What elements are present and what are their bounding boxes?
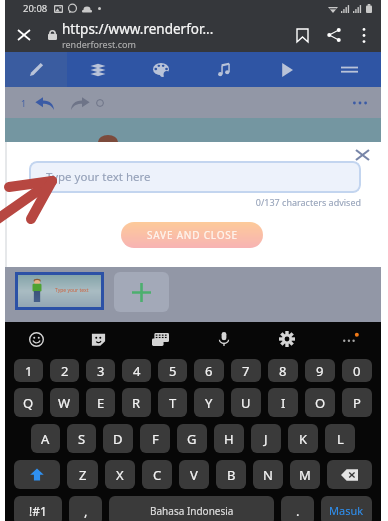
button[interactable]: Emoji [5,322,67,356]
button[interactable]: Backspace [327,460,372,489]
button[interactable]: Layers [67,52,129,87]
button[interactable]: 8 [268,359,298,382]
staticText: 1 [25,362,33,380]
staticText: E [97,394,105,412]
button[interactable]: 0 [342,359,372,382]
staticText: https://www.renderfor... [62,20,214,38]
button[interactable]: G [177,424,207,453]
button[interactable]: !#1 [14,496,62,521]
staticText: B [227,466,236,484]
button[interactable]: F [140,424,170,453]
button[interactable]: Bookmark [286,19,318,51]
staticText: S [78,430,86,448]
staticText: 9 [316,362,324,380]
button[interactable]: J [251,424,281,453]
button[interactable]: Bahasa Indonesia [109,496,274,521]
button[interactable]: P [342,388,372,417]
button[interactable]: Scene 1 [18,275,101,307]
staticText: W [58,394,71,412]
button[interactable]: D [103,424,133,453]
button[interactable]: 6 [194,359,224,382]
button[interactable]: , [69,496,102,521]
button[interactable]: 4 [122,359,151,382]
staticText: V [190,466,198,484]
staticText: A [41,430,50,448]
button[interactable]: C [142,460,172,489]
staticText: 0 [353,362,361,380]
button[interactable]: 7 [231,359,261,382]
button[interactable]: R [122,388,151,417]
staticText: U [241,394,251,412]
button[interactable]: 2 [50,359,79,382]
button[interactable]: 3 [86,359,115,382]
button[interactable]: L [325,424,355,453]
staticText: N [263,466,273,484]
staticText: , [84,502,88,520]
button[interactable]: More [347,90,373,116]
staticText: 6 [205,362,213,380]
button[interactable]: W [50,388,79,417]
button[interactable]: SAVE AND CLOSE [121,222,263,248]
button[interactable]: S [67,424,96,453]
staticText: . [296,502,300,520]
button[interactable]: X [105,460,135,489]
staticText: R [132,394,141,412]
button[interactable]: Redo [70,93,90,113]
button[interactable]: Share [318,19,350,51]
button[interactable]: More options [318,322,381,356]
staticText: I [281,394,286,412]
button[interactable]: Menu [318,52,381,87]
staticText: !#1 [29,503,47,519]
button[interactable]: Type your text here [29,161,361,193]
staticText: 3 [97,362,105,380]
staticText: J [264,430,268,448]
staticText: T [169,394,177,412]
button[interactable]: 9 [305,359,335,382]
staticText: 1 [21,97,27,109]
button[interactable]: H [214,424,244,453]
button[interactable]: Close tab [5,17,43,52]
button[interactable]: Keyboard layout [129,322,192,356]
button[interactable]: Settings [255,322,318,356]
button[interactable]: I [268,388,298,417]
button[interactable]: O [305,388,335,417]
staticText: 2 [61,362,69,380]
button[interactable]: Edit [5,52,67,87]
button[interactable]: K [288,424,318,453]
button[interactable]: Y [194,388,224,417]
button[interactable]: Z [67,460,98,489]
button[interactable]: E [86,388,115,417]
button[interactable]: T [158,388,187,417]
staticText: 4 [133,362,141,380]
button[interactable]: Undo [34,93,54,113]
button[interactable]: Voice input [192,322,255,356]
button[interactable]: M [290,460,320,489]
button[interactable]: U [231,388,261,417]
button[interactable]: Shift [14,460,60,489]
button[interactable]: V [179,460,209,489]
staticText: H [224,430,234,448]
staticText: C [153,466,162,484]
button[interactable]: 5 [158,359,187,382]
button[interactable]: Music [192,52,255,87]
staticText: O [315,394,326,412]
button[interactable]: B [216,460,246,489]
staticText: 0/137 characters advised [5,196,361,208]
button[interactable]: Close dialog [351,144,373,166]
button[interactable]: Preview [255,52,318,87]
button[interactable]: Masuk [321,496,372,521]
staticText: SAVE AND CLOSE [147,228,238,242]
button[interactable]: N [253,460,283,489]
button[interactable]: Stickers [67,322,129,356]
button[interactable]: . [281,496,314,521]
button[interactable]: Colors [129,52,192,87]
staticText: P [353,394,361,412]
staticText: F [152,430,159,448]
button[interactable]: Add scene [114,272,169,312]
button[interactable]: 1 [14,359,43,382]
staticText: 8 [279,362,287,380]
staticText: M [299,466,311,484]
button[interactable]: Q [14,388,43,417]
button[interactable]: A [31,424,60,453]
button[interactable]: More options [350,21,378,49]
